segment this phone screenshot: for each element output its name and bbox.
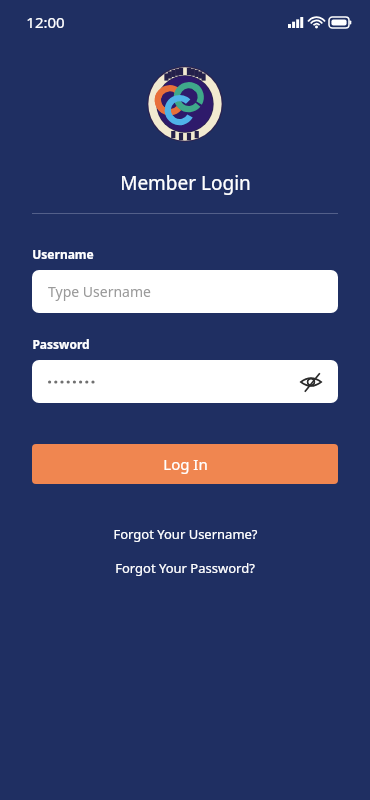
staticText: Type Username [48,282,151,301]
button[interactable]: Forgot Your Username? [103,522,268,546]
staticText: Username [32,246,94,262]
staticText: Forgot Your Password? [115,559,255,577]
staticText: 12:00 [26,12,65,32]
staticText: Password [32,336,90,352]
button[interactable]: Show password [296,367,326,397]
button[interactable]: Forgot Your Password? [105,556,265,580]
button[interactable]: Type Username [32,270,338,313]
button[interactable]: Log In [32,444,338,484]
button[interactable]: Show password [32,360,338,403]
staticText: Log In [163,454,208,474]
staticText: Member Login [120,170,251,196]
staticText: Forgot Your Username? [113,525,258,543]
